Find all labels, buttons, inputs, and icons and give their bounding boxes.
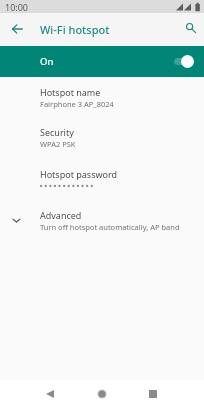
button[interactable]: Advanced bbox=[0, 209, 204, 232]
button[interactable]: Recent apps bbox=[137, 382, 169, 406]
button[interactable]: Navigate up bbox=[3, 15, 31, 43]
staticText: Turn off hotspot automatically, AP band bbox=[40, 222, 180, 232]
button[interactable]: Security bbox=[0, 126, 204, 149]
button[interactable]: Back bbox=[34, 382, 66, 406]
staticText: Hotspot name bbox=[40, 86, 101, 98]
button[interactable]: Hotspot password bbox=[0, 168, 204, 188]
staticText: Wi-Fi hotspot bbox=[40, 22, 110, 37]
staticText: WPA2 PSK bbox=[40, 139, 76, 149]
button[interactable]: On bbox=[0, 46, 204, 77]
staticText: Hotspot password bbox=[40, 168, 118, 180]
staticText: Advanced bbox=[40, 209, 82, 221]
button[interactable]: Search bbox=[177, 14, 204, 42]
button[interactable]: Hotspot name bbox=[0, 86, 204, 109]
staticText: Security bbox=[40, 126, 74, 138]
staticText: 10:00 bbox=[5, 1, 29, 13]
button[interactable]: Home bbox=[86, 382, 118, 406]
staticText: Fairphone 3 AP_8024 bbox=[40, 99, 114, 109]
staticText: On bbox=[40, 55, 54, 68]
